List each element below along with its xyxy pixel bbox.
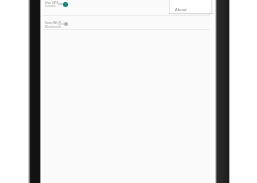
staticText: Bluetooth — [45, 24, 61, 29]
button[interactable]: Use GPS — [43, 0, 210, 14]
button[interactable]: Switch off — [58, 21, 70, 27]
button[interactable]: Scan Wi-Fi — [43, 20, 210, 34]
button[interactable]: Switch on — [58, 1, 70, 7]
button[interactable]: About — [170, 0, 211, 13]
staticText: Scan Wi-Fi — [45, 20, 62, 25]
staticText: Use GPS — [45, 0, 59, 5]
staticText: Locate — [45, 3, 56, 8]
staticText: About — [175, 7, 187, 13]
